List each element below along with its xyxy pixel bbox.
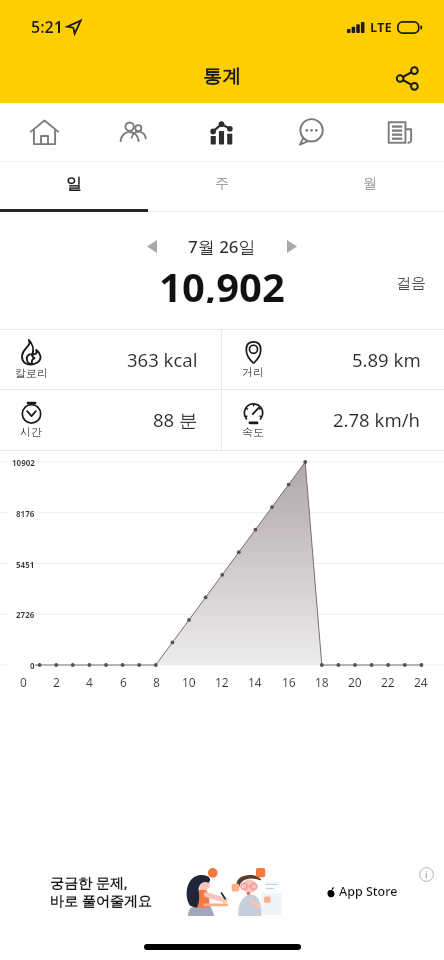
staticText: 5:21 xyxy=(31,16,63,38)
staticText: i xyxy=(425,868,428,880)
button[interactable]: 시간 xyxy=(0,390,221,449)
staticText: 2 xyxy=(53,674,60,690)
staticText: 월 xyxy=(363,175,377,193)
staticText: 0 xyxy=(30,660,35,671)
button[interactable]: Next day xyxy=(276,230,308,262)
staticText: 시간 xyxy=(20,425,42,439)
button[interactable]: 속도 xyxy=(222,390,444,449)
staticText: 16 xyxy=(282,674,296,690)
staticText: 2726 xyxy=(16,609,35,620)
button[interactable]: News xyxy=(355,103,444,161)
staticText: 거리 xyxy=(242,365,264,379)
staticText: 6 xyxy=(120,674,127,690)
button[interactable]: Previous day xyxy=(136,230,168,262)
staticText: 통계 xyxy=(203,65,241,89)
staticText: 0 xyxy=(20,674,27,690)
staticText: 5451 xyxy=(16,559,35,570)
staticText: 8176 xyxy=(16,508,35,519)
button[interactable]: Home xyxy=(0,103,88,161)
button[interactable]: Statistics xyxy=(177,103,266,161)
button[interactable]: Friends xyxy=(88,103,177,161)
staticText: 8 xyxy=(153,674,160,690)
staticText: 속도 xyxy=(242,425,264,439)
button[interactable]: Ad info xyxy=(416,864,436,884)
staticText: 2.78 km/h xyxy=(333,407,421,432)
button[interactable]: 궁금한 문제, xyxy=(0,850,444,938)
staticText: 14 xyxy=(248,674,262,690)
button[interactable]: 월 xyxy=(296,162,444,212)
button[interactable]: Share xyxy=(387,58,427,98)
staticText: 궁금한 문제, xyxy=(50,873,128,892)
staticText: 88 분 xyxy=(153,407,198,432)
staticText: 20 xyxy=(348,674,362,690)
staticText: 10,902 xyxy=(159,259,285,303)
staticText: 363 kcal xyxy=(127,347,198,372)
button[interactable]: 거리 xyxy=(222,330,444,389)
button[interactable]: 칼로리 xyxy=(0,330,221,389)
staticText: 24 xyxy=(414,674,428,690)
staticText: 바로 풀어줄게요 xyxy=(50,891,152,910)
staticText: 12 xyxy=(215,674,229,690)
staticText: App Store xyxy=(339,883,398,900)
staticText: 10 xyxy=(182,674,196,690)
staticText: 칼로리 xyxy=(15,366,48,380)
staticText: 4 xyxy=(86,674,93,690)
staticText: 18 xyxy=(315,674,329,690)
staticText: 5.89 km xyxy=(352,347,421,372)
staticText: 일 xyxy=(66,174,82,194)
staticText: LTE xyxy=(370,18,392,36)
staticText: 10902 xyxy=(12,457,35,468)
staticText: 주 xyxy=(215,175,229,193)
staticText: 22 xyxy=(381,674,395,690)
button[interactable]: 일 xyxy=(0,162,148,212)
button[interactable]: 주 xyxy=(148,162,296,212)
button[interactable]: Chat xyxy=(266,103,355,161)
staticText: 걸음 xyxy=(396,274,426,293)
staticText: 7월 26일 xyxy=(188,235,256,258)
